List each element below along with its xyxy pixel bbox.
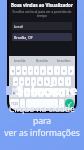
staticText: .	[61, 102, 62, 106]
button[interactable]: c	[31, 88, 37, 97]
button[interactable]: d	[25, 77, 30, 86]
button[interactable]: w	[16, 66, 21, 75]
staticText: n	[54, 91, 56, 95]
button[interactable]: Brasília, DF	[12, 33, 72, 41]
staticText: ver as informações	[4, 127, 80, 139]
other: Selecionar cidade	[6, 86, 12, 95]
staticText: ,	[22, 102, 23, 106]
button[interactable]: j	[51, 77, 57, 86]
button[interactable]: Espaço	[26, 99, 58, 108]
staticText: x	[26, 91, 28, 95]
staticText: y	[42, 69, 44, 73]
staticText: Boas vindas ao Visualizador	[9, 2, 75, 8]
staticText: p	[70, 69, 72, 73]
staticText: s	[21, 80, 23, 84]
staticText: brasília	[14, 58, 26, 63]
button[interactable]: g	[37, 77, 43, 86]
button[interactable]: a	[13, 77, 18, 86]
button[interactable]: e	[22, 66, 27, 75]
staticText: d	[27, 80, 29, 84]
staticText: o	[63, 69, 65, 73]
staticText: g	[39, 80, 41, 84]
staticText: f	[33, 80, 35, 84]
staticText: j	[54, 80, 55, 84]
staticText: a	[15, 80, 17, 84]
staticText: Clique na cidade para	[0, 103, 84, 127]
button[interactable]: v	[38, 88, 44, 97]
staticText: r	[30, 69, 32, 73]
button[interactable]: t	[34, 66, 39, 75]
button[interactable]: m	[59, 88, 65, 97]
button[interactable]: y	[40, 66, 46, 75]
staticText: brasil	[14, 24, 24, 29]
staticText: t	[36, 69, 38, 73]
button[interactable]: l	[65, 77, 71, 86]
staticText: Brasília	[36, 58, 48, 63]
button[interactable]: h	[44, 77, 50, 86]
button[interactable]: Buscar	[65, 99, 74, 108]
button[interactable]: brasilian	[53, 56, 75, 64]
staticText: l	[68, 80, 69, 84]
button[interactable]: n	[52, 88, 58, 97]
button[interactable]: i	[54, 66, 60, 75]
button[interactable]: r	[28, 66, 33, 75]
button[interactable]: Brasília	[31, 56, 53, 64]
staticText: u	[49, 69, 51, 73]
button[interactable]: x	[24, 88, 30, 97]
button[interactable]: u	[47, 66, 53, 75]
staticText: Brasília, DF	[14, 35, 33, 40]
button[interactable]: Selecionar cidade	[2, 80, 82, 100]
staticText: z	[20, 91, 22, 95]
button[interactable]: .	[59, 99, 64, 108]
button[interactable]: brasil	[12, 22, 72, 30]
button[interactable]: ?123	[10, 99, 19, 108]
staticText: h	[46, 80, 48, 84]
button[interactable]: Shift	[10, 88, 17, 97]
staticText: Selecione	[16, 81, 78, 99]
staticText: e	[24, 69, 26, 73]
button[interactable]: f	[31, 77, 36, 86]
staticText: i	[57, 69, 58, 73]
staticText: v	[40, 91, 42, 95]
staticText: c	[33, 91, 35, 95]
button[interactable]: p	[68, 66, 74, 75]
button[interactable]: o	[61, 66, 67, 75]
staticText: m	[61, 91, 64, 95]
button[interactable]: b	[45, 88, 51, 97]
button[interactable]: z	[18, 88, 23, 97]
button[interactable]: brasília	[9, 56, 31, 64]
staticText: q	[12, 69, 14, 73]
button[interactable]: Backspace	[66, 88, 74, 97]
staticText: Escolha um local para ver a previsão do …	[9, 10, 75, 18]
button[interactable]: k	[58, 77, 64, 86]
staticText: ?123	[11, 102, 18, 106]
staticText: brasilian	[57, 58, 71, 63]
button[interactable]: ,	[20, 99, 25, 108]
button[interactable]: s	[19, 77, 24, 86]
staticText: k	[60, 80, 62, 84]
staticText: b	[47, 91, 49, 95]
staticText: w	[17, 69, 20, 73]
button[interactable]: q	[10, 66, 15, 75]
